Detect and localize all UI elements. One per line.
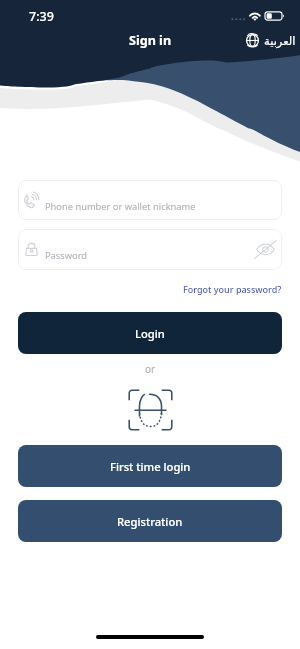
staticText: العربية xyxy=(264,34,296,47)
button[interactable]: Face ID login xyxy=(128,389,173,431)
staticText: 7:39 xyxy=(29,8,54,25)
button[interactable]: Phone number or wallet nickname xyxy=(18,180,282,220)
other: Show password xyxy=(253,240,278,259)
staticText: Password xyxy=(45,249,88,262)
button[interactable]: Registration xyxy=(18,500,282,542)
button[interactable]: Forgot your password? xyxy=(183,283,282,295)
staticText: Registration xyxy=(117,514,183,529)
button[interactable]: Login xyxy=(18,312,282,354)
staticText: Sign in xyxy=(129,32,172,49)
staticText: Login xyxy=(135,326,165,341)
staticText: Forgot your password? xyxy=(183,283,282,295)
button[interactable]: Password xyxy=(18,229,282,270)
staticText: First time login xyxy=(110,459,191,474)
button[interactable]: First time login xyxy=(18,445,282,487)
staticText: Phone number or wallet nickname xyxy=(45,200,196,213)
staticText: or xyxy=(0,362,300,376)
button[interactable]: Change language to Arabic xyxy=(246,34,296,47)
